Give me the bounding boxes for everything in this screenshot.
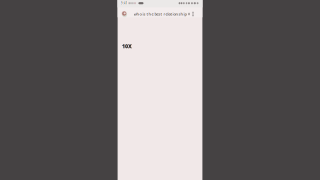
button[interactable]: Site information — [120, 9, 129, 18]
button[interactable]: More options — [190, 9, 196, 18]
button[interactable]: who is the best relationship — [133, 9, 189, 18]
staticText: 10X — [122, 43, 132, 50]
staticText: who is the best relationship — [133, 11, 186, 17]
staticText: 9:41 — [121, 1, 128, 5]
button[interactable]: Stop loading — [186, 9, 192, 18]
